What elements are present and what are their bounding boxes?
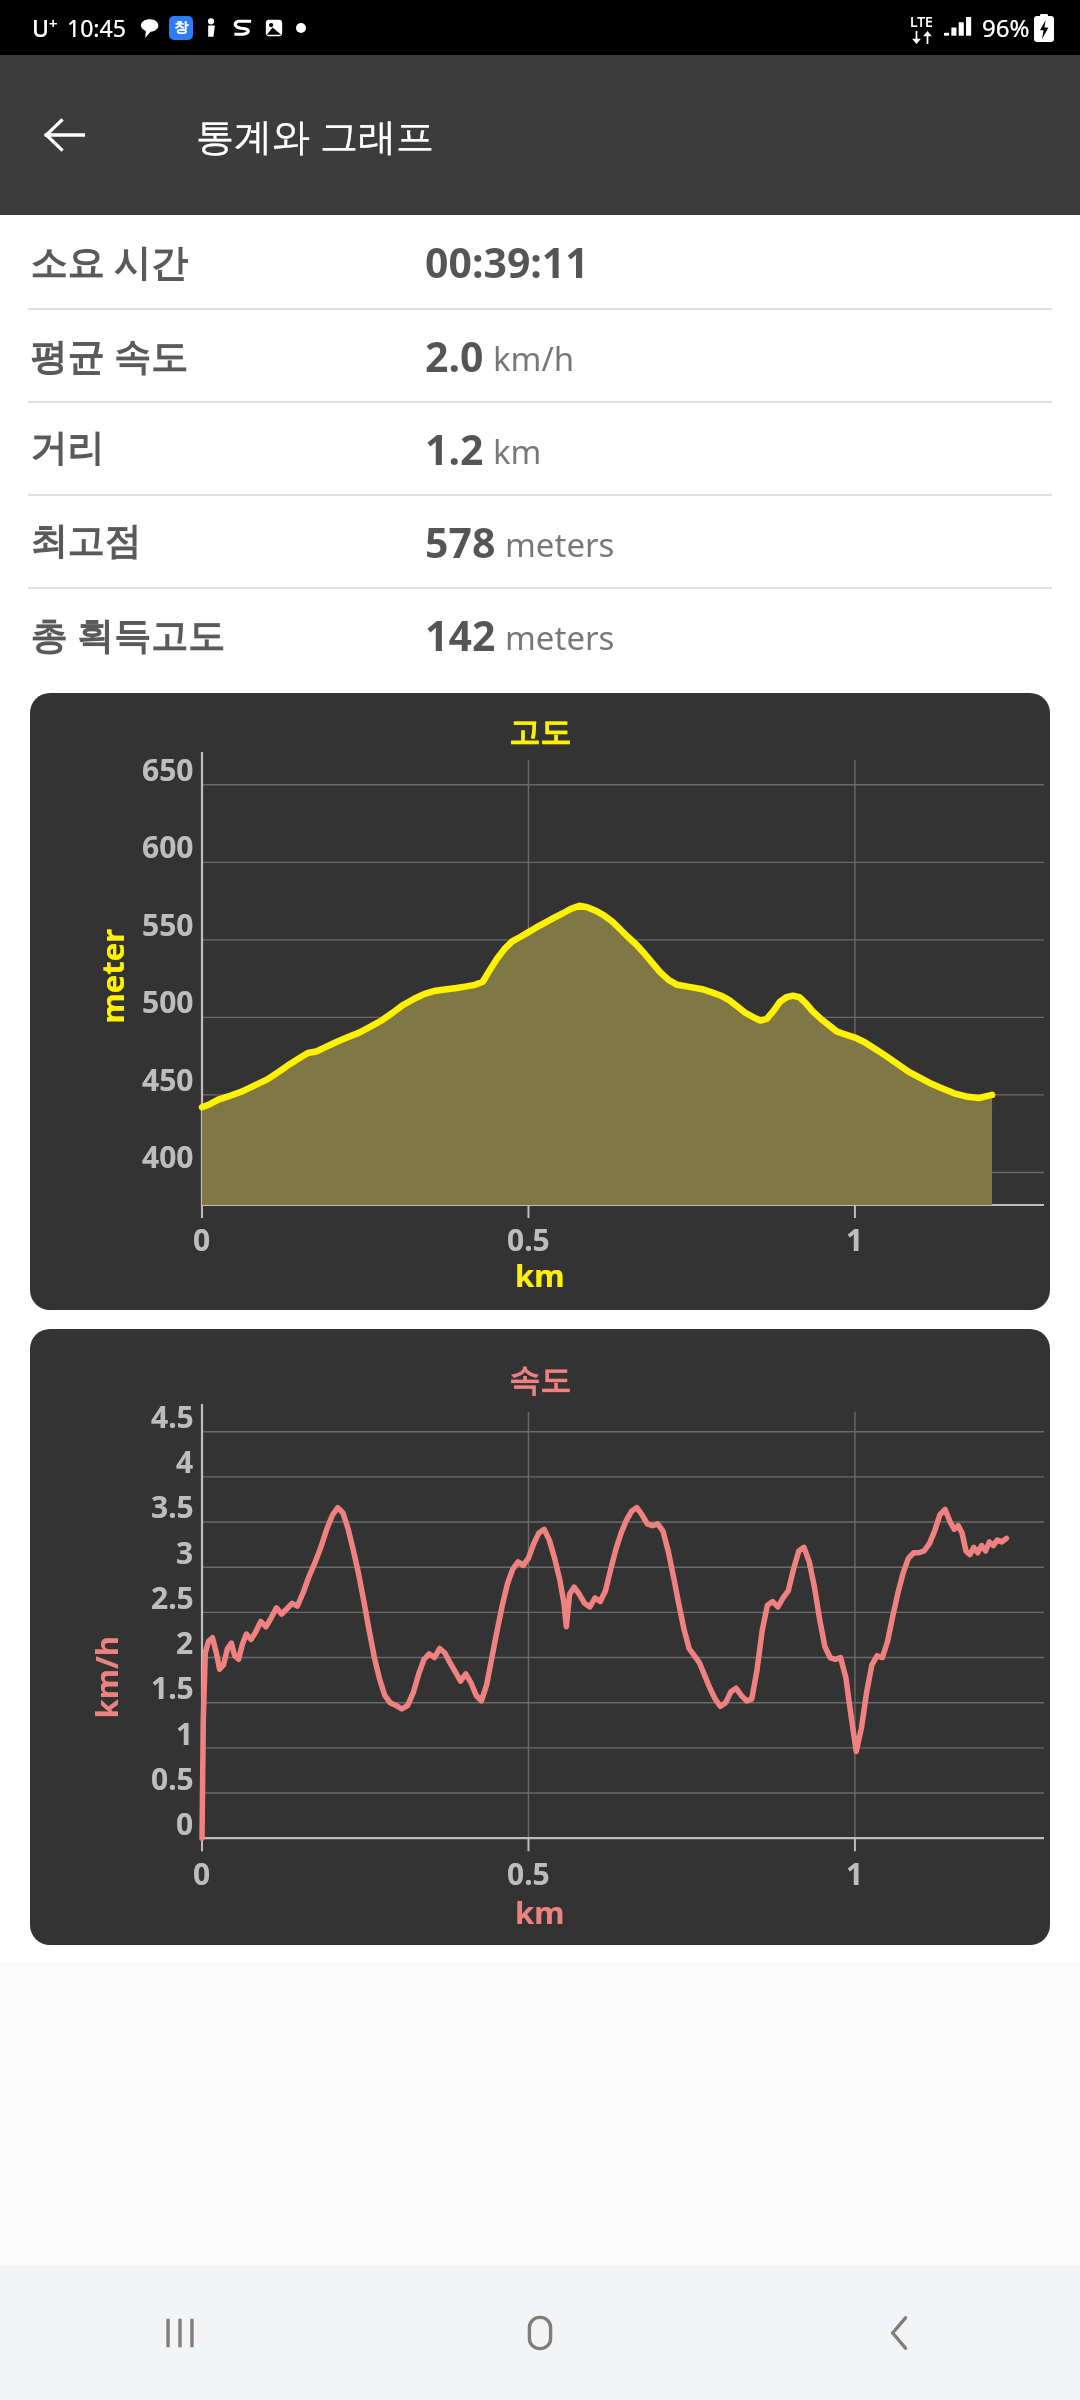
staticText: 00:39:11	[425, 234, 589, 290]
staticText: 0	[193, 1219, 211, 1260]
staticText: 0.5	[507, 1219, 550, 1260]
staticText: 총 획득고도	[30, 609, 225, 660]
button[interactable]: Back	[720, 2265, 1080, 2400]
staticText: km	[493, 429, 542, 474]
button[interactable]: Recents	[0, 2265, 360, 2400]
staticText: 96%	[982, 11, 1030, 44]
staticText: 최고점	[30, 518, 141, 565]
staticText: 578	[425, 514, 496, 570]
staticText: meter	[90, 928, 132, 1023]
staticText: 4.5	[151, 1396, 194, 1437]
staticText: 고도	[509, 713, 571, 752]
staticText: 550	[142, 904, 194, 945]
staticText: 3	[176, 1532, 194, 1573]
button[interactable]: 거리	[0, 403, 1080, 494]
button[interactable]: Back	[22, 93, 106, 177]
staticText: meters	[505, 615, 615, 660]
staticText: km/h	[493, 336, 575, 381]
staticText: +	[49, 13, 58, 33]
staticText: 600	[142, 826, 194, 867]
staticText: 10:45	[67, 12, 126, 43]
staticText: 1	[176, 1713, 194, 1754]
staticText: 0	[176, 1803, 194, 1844]
staticText: 1	[846, 1219, 864, 1260]
staticText: 1	[846, 1853, 864, 1894]
staticText: U	[32, 12, 49, 43]
staticText: km	[515, 1254, 565, 1296]
button[interactable]: 최고점	[0, 496, 1080, 587]
staticText: 창	[174, 19, 188, 37]
staticText: km	[515, 1891, 565, 1933]
button[interactable]: 총 획득고도	[0, 589, 1080, 680]
staticText: 400	[142, 1136, 194, 1177]
staticText: 통계와 그래프	[196, 109, 434, 161]
staticText: 소요 시간	[30, 236, 188, 287]
staticText: 500	[142, 981, 194, 1022]
staticText: 1.5	[151, 1667, 194, 1708]
staticText: 4	[176, 1441, 194, 1482]
staticText: km/h	[84, 1635, 126, 1718]
staticText: 1.2	[425, 421, 484, 477]
staticText: 거리	[30, 425, 104, 472]
staticText: 0.5	[507, 1853, 550, 1894]
staticText: 3.5	[151, 1486, 194, 1527]
staticText: LTE	[910, 12, 933, 31]
staticText: 평균 속도	[30, 330, 188, 381]
button[interactable]: 고도	[30, 693, 1050, 1310]
staticText: meters	[505, 522, 615, 567]
button[interactable]: 소요 시간	[0, 215, 1080, 308]
staticText: 450	[142, 1059, 194, 1100]
staticText: 속도	[509, 1361, 571, 1400]
button[interactable]: 속도	[30, 1329, 1050, 1945]
staticText: 2.0	[425, 328, 484, 384]
button[interactable]: Home	[360, 2265, 720, 2400]
staticText: 2.5	[151, 1577, 194, 1618]
staticText: 0.5	[151, 1758, 194, 1799]
button[interactable]: 평균 속도	[0, 310, 1080, 401]
staticText: 142	[425, 607, 496, 663]
staticText: 0	[193, 1853, 211, 1894]
staticText: 650	[142, 749, 194, 790]
staticText: 2	[176, 1622, 194, 1663]
